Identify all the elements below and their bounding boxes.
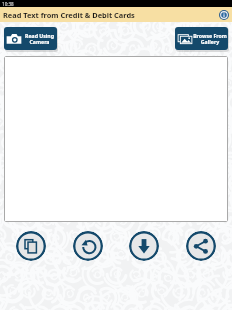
staticText: Read Using Camera — [25, 32, 54, 46]
staticText: Read Text from Credit & Debit Cards — [3, 10, 135, 20]
button[interactable]: Info — [219, 10, 229, 20]
button[interactable]: Reset — [73, 231, 103, 261]
staticText: Browse From Gallery — [193, 32, 227, 46]
staticText: 10:38 — [2, 1, 14, 7]
button[interactable]: Copy — [16, 231, 46, 261]
button[interactable]: Share — [186, 231, 216, 261]
button[interactable]: Read Using Camera — [4, 27, 57, 50]
button[interactable]: Download — [129, 231, 159, 261]
button[interactable]: Browse From Gallery — [175, 27, 228, 50]
